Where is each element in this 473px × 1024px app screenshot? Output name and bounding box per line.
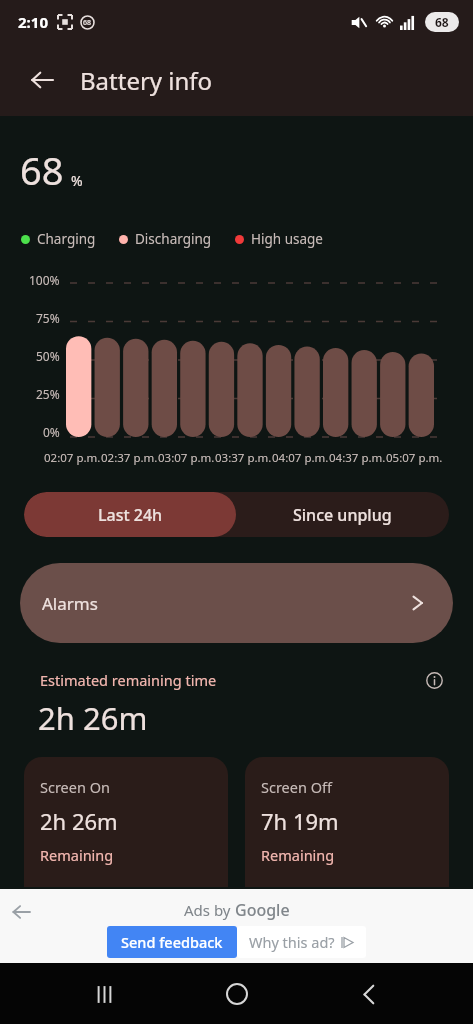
- staticText: 100%: [29, 272, 60, 288]
- staticText: 05:07 p.m.: [386, 450, 443, 466]
- button[interactable]: Screen On: [24, 757, 228, 887]
- staticText: 04:37 p.m.: [329, 450, 386, 466]
- staticText: Remaining: [261, 845, 335, 865]
- staticText: Charging: [37, 230, 96, 248]
- staticText: 50%: [36, 348, 60, 364]
- staticText: 7h 19m: [261, 806, 339, 836]
- staticText: 02:37 p.m.: [101, 450, 158, 466]
- staticText: Send feedback: [121, 932, 223, 952]
- staticText: High usage: [251, 230, 323, 248]
- button[interactable]: Close ad: [4, 895, 38, 929]
- staticText: Last 24h: [98, 504, 163, 526]
- staticText: Discharging: [135, 230, 212, 248]
- staticText: Estimated remaining time: [40, 670, 217, 690]
- button[interactable]: Send feedback: [107, 926, 237, 958]
- staticText: 0%: [43, 424, 60, 440]
- staticText: 68: [20, 144, 64, 196]
- button[interactable]: Alarms: [20, 563, 453, 643]
- button[interactable]: Screen Off: [245, 757, 449, 887]
- staticText: Ads by: [184, 900, 235, 920]
- staticText: 75%: [36, 310, 60, 326]
- button[interactable]: Recents: [76, 966, 132, 1022]
- staticText: 04:07 p.m.: [272, 450, 329, 466]
- button[interactable]: Info: [421, 667, 447, 693]
- staticText: Why this ad?: [249, 932, 335, 952]
- staticText: 68: [83, 18, 92, 28]
- staticText: Remaining: [40, 845, 114, 865]
- staticText: 25%: [36, 386, 60, 402]
- staticText: 2:10: [18, 12, 48, 32]
- staticText: %: [71, 171, 83, 190]
- staticText: Google: [235, 899, 290, 921]
- staticText: 68: [435, 14, 449, 30]
- button[interactable]: Last 24h: [24, 492, 236, 537]
- staticText: Battery info: [80, 64, 213, 97]
- staticText: 03:37 p.m.: [215, 450, 272, 466]
- staticText: Screen On: [40, 777, 110, 797]
- staticText: Alarms: [42, 592, 98, 615]
- staticText: 2h 26m: [40, 806, 118, 836]
- button[interactable]: Back: [341, 966, 397, 1022]
- staticText: 02:07 p.m.: [44, 450, 101, 466]
- staticText: Since unplug: [293, 504, 392, 526]
- button[interactable]: Why this ad?: [237, 926, 366, 958]
- staticText: 2h 26m: [38, 697, 148, 739]
- staticText: Screen Off: [261, 777, 333, 797]
- staticText: 03:07 p.m.: [158, 450, 215, 466]
- button[interactable]: Home: [209, 966, 265, 1022]
- button[interactable]: Since unplug: [236, 492, 449, 537]
- button[interactable]: Back: [20, 58, 64, 102]
